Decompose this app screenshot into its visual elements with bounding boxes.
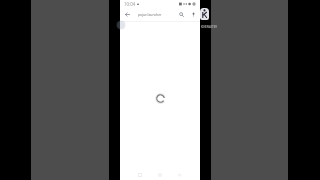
button[interactable]: Back bbox=[121, 8, 133, 21]
staticText: KINEMASTER bbox=[201, 25, 217, 29]
staticText: pojav launcher bbox=[138, 12, 162, 17]
staticText: 10:04 bbox=[124, 1, 136, 7]
button[interactable]: Recents bbox=[134, 169, 146, 180]
button[interactable]: Voice search bbox=[189, 10, 198, 19]
button[interactable]: Home bbox=[154, 169, 166, 180]
button[interactable]: Search bbox=[177, 10, 186, 19]
